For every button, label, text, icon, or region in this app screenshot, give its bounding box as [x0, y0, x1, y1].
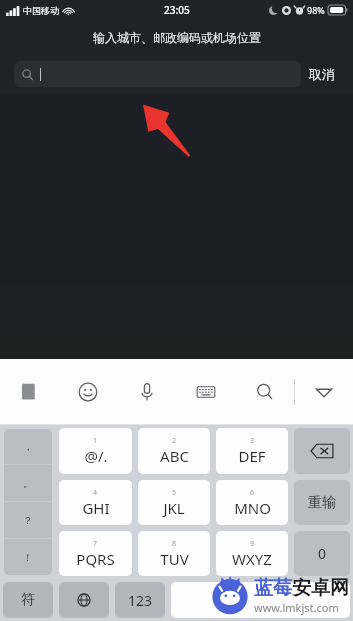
- staticText: www.lmkjst.com: [254, 600, 339, 615]
- staticText: 98%: [307, 4, 325, 16]
- button[interactable]: 3: [216, 428, 288, 474]
- staticText: WXYZ: [232, 549, 272, 569]
- button[interactable]: ？: [4, 502, 52, 538]
- staticText: PQRS: [76, 549, 115, 569]
- staticText: GHI: [82, 498, 110, 518]
- button[interactable]: 1: [59, 428, 132, 474]
- button[interactable]: 4: [59, 480, 132, 525]
- staticText: 2: [172, 436, 177, 446]
- button[interactable]: 8: [138, 531, 210, 576]
- button[interactable]: 5: [138, 480, 210, 525]
- staticText: 。: [23, 477, 33, 490]
- button[interactable]: [171, 582, 350, 618]
- staticText: 23:05: [164, 3, 190, 17]
- staticText: MNO: [234, 498, 271, 518]
- button[interactable]: Delete: [294, 428, 350, 474]
- staticText: 蓝莓: [254, 576, 292, 600]
- button[interactable]: 9: [216, 531, 288, 576]
- staticText: DEF: [238, 446, 266, 466]
- button[interactable]: ！: [4, 539, 52, 575]
- staticText: ABC: [160, 446, 189, 466]
- button[interactable]: Clipboard: [0, 359, 58, 425]
- staticText: 5: [172, 488, 177, 498]
- staticText: 1: [93, 436, 98, 446]
- staticText: 7: [93, 539, 98, 549]
- staticText: ？: [23, 514, 33, 527]
- button[interactable]: 6: [216, 480, 288, 525]
- button[interactable]: 2: [138, 428, 210, 474]
- staticText: ！: [23, 551, 33, 564]
- button[interactable]: 7: [59, 531, 132, 576]
- staticText: 重输: [308, 494, 336, 512]
- staticText: 安卓网: [292, 576, 349, 600]
- staticText: ，: [23, 440, 33, 453]
- button[interactable]: Hide keyboard: [309, 377, 339, 407]
- button[interactable]: Keyboard: [176, 359, 235, 425]
- staticText: 符: [21, 591, 35, 609]
- button[interactable]: 取消: [301, 62, 343, 86]
- staticText: 3: [250, 436, 255, 446]
- button[interactable]: ，: [4, 429, 52, 464]
- staticText: 输入城市、邮政编码或机场位置: [93, 30, 261, 45]
- staticText: 6: [250, 488, 255, 498]
- staticText: TUV: [160, 549, 189, 569]
- button[interactable]: Language: [59, 582, 109, 618]
- button[interactable]: [14, 61, 301, 87]
- staticText: 4: [93, 488, 98, 498]
- staticText: @/.: [84, 446, 108, 466]
- staticText: 9: [250, 539, 255, 549]
- button[interactable]: Voice input: [117, 359, 176, 425]
- staticText: 中国移动: [23, 5, 59, 16]
- button[interactable]: 0: [294, 531, 350, 576]
- button[interactable]: Search: [235, 359, 294, 425]
- staticText: 0: [318, 544, 327, 563]
- staticText: 8: [172, 539, 177, 549]
- button[interactable]: 123: [115, 582, 165, 618]
- staticText: JKL: [163, 498, 185, 518]
- button[interactable]: 符: [3, 582, 53, 618]
- button[interactable]: 重输: [294, 480, 350, 525]
- button[interactable]: Emoji: [58, 359, 117, 425]
- staticText: 取消: [309, 66, 335, 82]
- staticText: 123: [128, 591, 153, 610]
